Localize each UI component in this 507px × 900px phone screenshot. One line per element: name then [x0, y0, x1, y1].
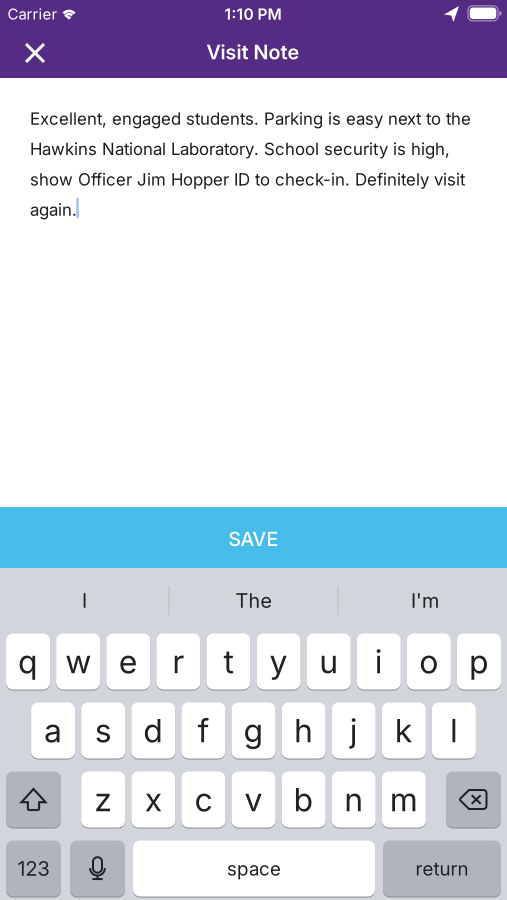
button[interactable]: z [81, 771, 125, 828]
staticText: d [143, 712, 163, 749]
staticText: y [270, 643, 288, 680]
staticText: a [44, 712, 62, 749]
button[interactable]: w [56, 633, 100, 690]
staticText: h [294, 712, 313, 749]
button[interactable]: q [6, 633, 50, 690]
staticText: Carrier [7, 5, 57, 23]
staticText: f [197, 712, 209, 749]
staticText: again. [30, 200, 77, 220]
staticText: space [227, 857, 281, 880]
button[interactable]: e [106, 633, 150, 690]
staticText: return [415, 857, 468, 880]
staticText: The [235, 589, 271, 612]
staticText: p [469, 643, 489, 680]
button[interactable]: c [181, 771, 225, 828]
button[interactable]: space [133, 840, 375, 897]
button[interactable]: p [457, 633, 501, 690]
staticText: show Officer Jim Hopper ID to check-in. … [30, 169, 465, 189]
staticText: o [419, 643, 438, 680]
staticText: 123 [17, 857, 49, 880]
staticText: b [294, 781, 314, 818]
staticText: t [223, 643, 233, 680]
button[interactable]: s [81, 702, 125, 759]
button[interactable]: u [307, 633, 351, 690]
button[interactable]: I'm [345, 576, 505, 624]
button[interactable]: d [131, 702, 175, 759]
button[interactable]: g [231, 702, 275, 759]
button[interactable]: Shift [6, 771, 61, 828]
staticText: I [82, 589, 87, 612]
staticText: Hawkins National Laboratory. School secu… [30, 139, 450, 159]
button[interactable]: f [181, 702, 225, 759]
staticText: n [344, 781, 363, 818]
button[interactable]: h [282, 702, 326, 759]
staticText: 1:10 PM [224, 5, 281, 23]
staticText: j [350, 712, 358, 749]
staticText: l [450, 712, 458, 749]
staticText: SAVE [228, 527, 278, 550]
staticText: z [94, 781, 112, 818]
button[interactable]: Close [13, 31, 57, 75]
staticText: r [172, 643, 184, 680]
staticText: x [145, 781, 162, 818]
staticText: u [319, 643, 338, 680]
button[interactable]: a [31, 702, 75, 759]
staticText: v [244, 781, 262, 818]
staticText: w [65, 643, 91, 680]
button[interactable]: m [382, 771, 426, 828]
button[interactable]: k [382, 702, 426, 759]
button[interactable]: n [332, 771, 376, 828]
button[interactable]: I [4, 576, 164, 624]
staticText: I'm [411, 589, 439, 612]
button[interactable]: return [383, 840, 501, 897]
button[interactable]: v [231, 771, 275, 828]
staticText: m [390, 781, 418, 818]
button[interactable]: Dictate [70, 840, 125, 897]
button[interactable]: o [407, 633, 451, 690]
staticText: s [95, 712, 112, 749]
button[interactable]: Delete [446, 771, 501, 828]
staticText: i [375, 643, 383, 680]
staticText: g [243, 712, 263, 749]
button[interactable]: y [257, 633, 301, 690]
staticText: e [119, 643, 138, 680]
button[interactable]: i [357, 633, 401, 690]
button[interactable]: j [332, 702, 376, 759]
button[interactable]: t [206, 633, 250, 690]
button[interactable]: b [282, 771, 326, 828]
button[interactable]: Numbers [6, 840, 61, 897]
staticText: Excellent, engaged students. Parking is … [30, 108, 471, 128]
button[interactable]: SAVE [0, 507, 507, 568]
staticText: Visit Note [206, 40, 299, 64]
staticText: q [18, 643, 38, 680]
button[interactable]: x [131, 771, 175, 828]
staticText: k [395, 712, 413, 749]
button[interactable]: r [156, 633, 200, 690]
staticText: c [194, 781, 212, 818]
button[interactable]: The [173, 576, 333, 624]
button[interactable]: l [432, 702, 476, 759]
